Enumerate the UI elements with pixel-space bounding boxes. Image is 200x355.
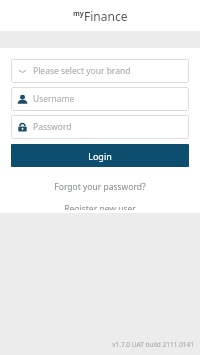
staticText: Login bbox=[88, 150, 112, 162]
staticText: my bbox=[73, 9, 84, 19]
staticText: v1.7.0 UAT build 2111.0141 bbox=[112, 340, 194, 349]
staticText: Password bbox=[33, 121, 72, 133]
button[interactable]: Login bbox=[11, 144, 189, 167]
staticText: Forgot your password? bbox=[54, 181, 146, 193]
button[interactable]: Password bbox=[11, 115, 189, 139]
staticText: Username bbox=[33, 93, 75, 105]
staticText: Please select your brand bbox=[33, 65, 131, 77]
staticText: Register new user bbox=[64, 203, 136, 210]
button[interactable]: Register new user bbox=[0, 200, 200, 213]
button[interactable]: Forgot your password? bbox=[0, 178, 200, 196]
button[interactable]: Select your brand bbox=[11, 59, 189, 83]
button[interactable]: Username bbox=[11, 87, 189, 111]
staticText: Finance bbox=[84, 8, 128, 24]
